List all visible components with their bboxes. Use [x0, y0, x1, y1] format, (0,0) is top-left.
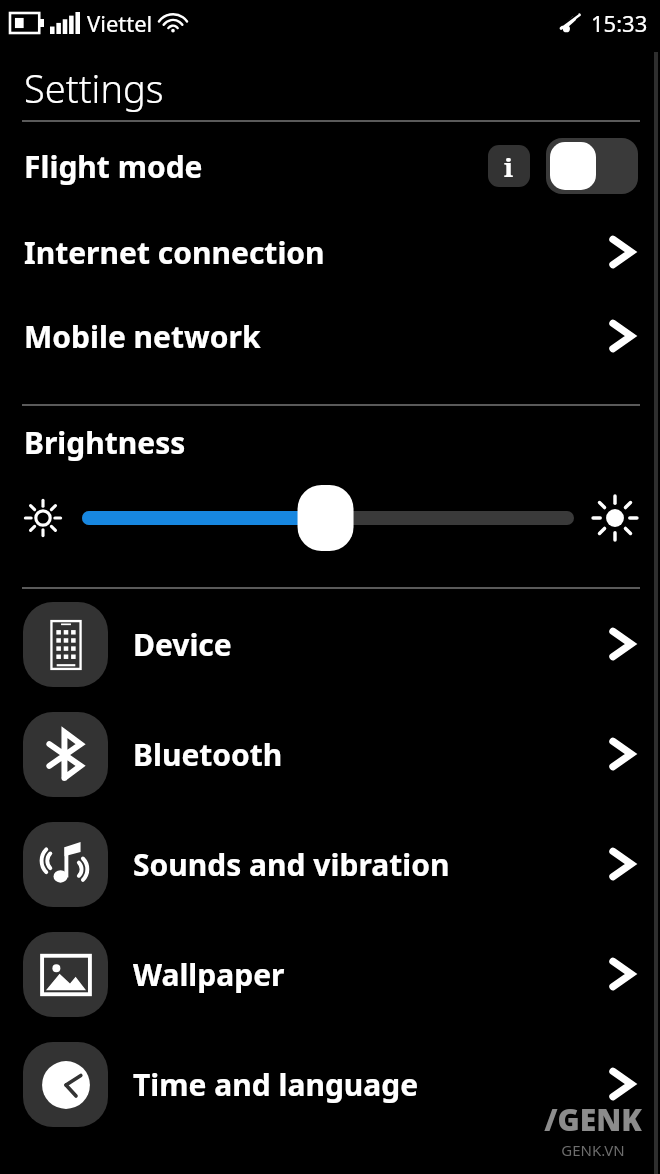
button[interactable]: Flight mode information	[488, 145, 530, 187]
staticText: Settings	[24, 62, 164, 114]
button[interactable]: Time and language	[0, 1029, 660, 1139]
button[interactable]: Device	[0, 589, 660, 699]
staticText: GENK.VN	[561, 1140, 625, 1160]
staticText: Internet connection	[24, 232, 610, 273]
staticText: /GENK	[544, 1099, 642, 1140]
button[interactable]: Sounds and vibration	[0, 809, 660, 919]
staticText: Sounds and vibration	[133, 844, 610, 885]
button[interactable]: Flight mode	[0, 122, 660, 210]
button[interactable]: Internet connection	[0, 210, 660, 294]
staticText: Device	[133, 624, 610, 665]
button[interactable]: Flight mode toggle	[546, 138, 638, 194]
staticText: Time and language	[133, 1064, 610, 1105]
staticText: i	[504, 149, 514, 184]
button[interactable]: Bluetooth	[0, 699, 660, 809]
staticText: Wallpaper	[133, 954, 610, 995]
staticText: Viettel	[87, 8, 153, 38]
staticText: Mobile network	[24, 316, 610, 357]
button[interactable]: Mobile network	[0, 294, 660, 378]
staticText: Brightness	[24, 422, 186, 463]
button[interactable]: Wallpaper	[0, 919, 660, 1029]
staticText: Bluetooth	[133, 734, 610, 775]
staticText: Flight mode	[24, 146, 488, 187]
button[interactable]: Brightness slider	[0, 463, 660, 573]
staticText: 15:33	[591, 8, 648, 38]
